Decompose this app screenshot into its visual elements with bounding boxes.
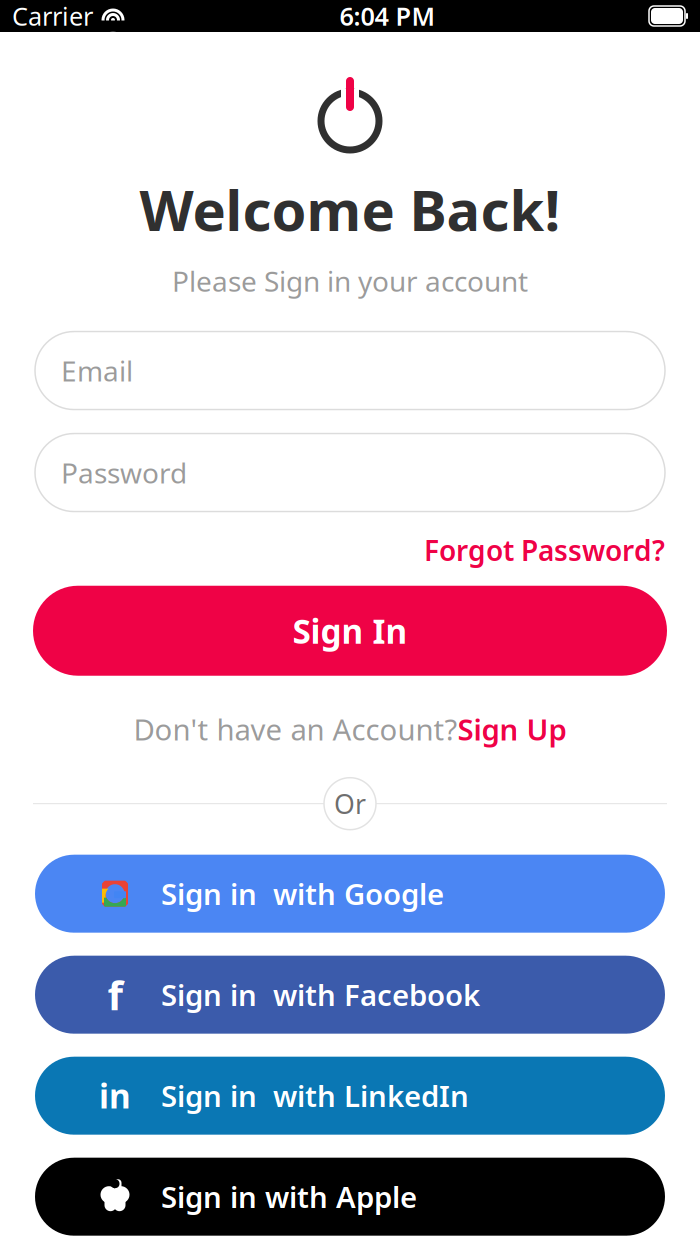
staticText: Sign in with Facebook: [161, 975, 480, 1014]
staticText: f: [107, 968, 122, 1021]
button[interactable]: Sign Up: [457, 710, 566, 749]
staticText: Email: [61, 352, 133, 389]
staticText: Sign in with Google: [161, 874, 444, 913]
staticText: Or: [334, 786, 366, 821]
button[interactable]: Sign in with Google: [35, 855, 665, 933]
staticText: Forgot Password?: [424, 531, 665, 569]
staticText: Please Sign in your account: [172, 262, 528, 300]
button[interactable]: f: [35, 956, 665, 1034]
staticText: Sign In: [292, 609, 407, 653]
staticText: Don't have an Account?: [133, 710, 457, 749]
staticText: Carrier: [12, 0, 93, 33]
staticText: Sign in with LinkedIn: [161, 1076, 469, 1115]
staticText: Sign in with Apple: [161, 1177, 417, 1216]
staticText: in: [99, 1074, 131, 1118]
button[interactable]: in: [35, 1057, 665, 1135]
staticText: 6:04 PM: [339, 0, 435, 33]
staticText: Sign Up: [457, 710, 566, 749]
button[interactable]: Password: [35, 433, 665, 511]
button[interactable]: Email: [35, 331, 665, 409]
button[interactable]: Sign in with Apple: [35, 1158, 665, 1236]
button[interactable]: Sign In: [33, 586, 667, 676]
staticText: Password: [61, 454, 187, 491]
button[interactable]: Forgot Password?: [424, 531, 665, 569]
staticText: Welcome Back!: [139, 172, 560, 246]
